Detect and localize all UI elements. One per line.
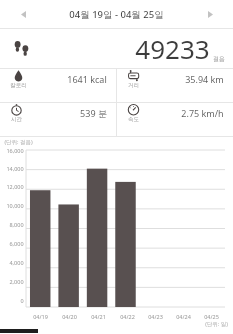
button[interactable]: 49233 [0, 29, 233, 68]
staticText: 04/23 [148, 313, 163, 320]
staticText: 4,000 [9, 259, 24, 266]
staticText: 2.75 km/h [181, 107, 224, 119]
button[interactable]: Next week [187, 0, 233, 28]
staticText: 6,000 [9, 240, 24, 247]
staticText: 04/22 [120, 313, 135, 320]
staticText: 04/24 [176, 313, 191, 320]
staticText: 8,000 [9, 221, 24, 228]
staticText: 04/25 [204, 313, 219, 320]
button[interactable]: Speed [117, 103, 233, 123]
button[interactable]: Previous week [0, 0, 46, 28]
staticText: 14,000 [6, 165, 24, 172]
staticText: 1641 kcal [67, 73, 107, 85]
staticText: 12,000 [6, 183, 24, 190]
staticText: (단위: 걸음) [4, 138, 33, 146]
button[interactable]: Weekly step chart [0, 137, 233, 334]
staticText: 04/21 [91, 313, 106, 320]
staticText: 걸음 [213, 55, 225, 63]
staticText: 거리 [128, 82, 139, 89]
button[interactable]: Calories [0, 69, 116, 89]
button[interactable]: Time [0, 103, 116, 123]
staticText: 04월 19일 - 04월 25일 [69, 8, 164, 21]
staticText: 04/20 [62, 313, 77, 320]
staticText: 539 분 [80, 107, 107, 119]
staticText: 49233 [135, 31, 210, 66]
staticText: 시간 [11, 116, 22, 123]
staticText: 10,000 [6, 202, 24, 209]
staticText: 0 [20, 297, 24, 304]
staticText: 2,000 [9, 278, 24, 285]
staticText: 16,000 [6, 147, 24, 154]
staticText: 35.94 km [185, 73, 224, 85]
staticText: 04/19 [33, 313, 48, 320]
staticText: (단위: 일) [205, 320, 228, 328]
staticText: 칼로리 [10, 82, 27, 89]
button[interactable]: Distance [117, 69, 233, 89]
staticText: 속도 [128, 116, 139, 123]
